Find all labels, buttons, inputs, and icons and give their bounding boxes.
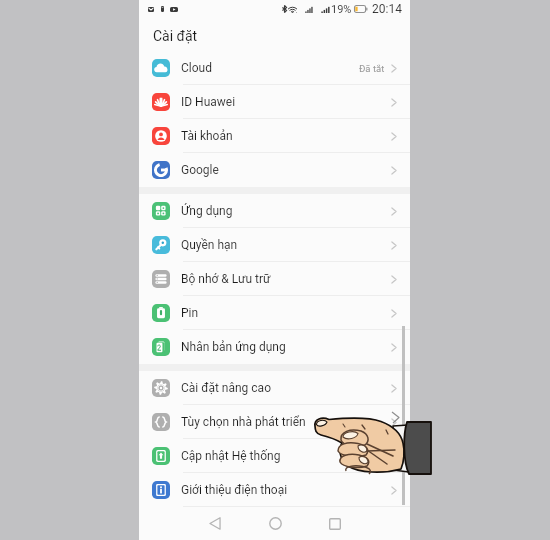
button[interactable]: Bộ nhớ & Lưu trữ — [139, 262, 410, 296]
staticText: Google — [181, 163, 219, 177]
staticText: Đã tắt — [359, 63, 385, 74]
button[interactable]: Tùy chọn nhà phát triển — [139, 405, 410, 439]
button[interactable]: Tài khoản — [139, 119, 410, 153]
button[interactable]: Cập nhật Hệ thống — [139, 439, 410, 473]
button[interactable]: Google — [139, 153, 410, 187]
button[interactable]: Nhân bản ứng dụng — [139, 330, 410, 364]
staticText: Nhân bản ứng dụng — [181, 340, 286, 354]
staticText: Cài đặt nâng cao — [181, 381, 271, 395]
button[interactable]: Cài đặt nâng cao — [139, 371, 410, 405]
staticText: Bộ nhớ & Lưu trữ — [181, 272, 271, 286]
staticText: Giới thiệu điện thoại — [181, 483, 288, 497]
staticText: Cloud — [181, 61, 212, 75]
button[interactable]: Recent apps — [305, 507, 365, 540]
button[interactable]: ID Huawei — [139, 85, 410, 119]
staticText: Pin — [181, 306, 199, 320]
button[interactable]: Pin — [139, 296, 410, 330]
button[interactable]: Quyền hạn — [139, 228, 410, 262]
button[interactable]: Back — [185, 507, 245, 540]
staticText: Quyền hạn — [181, 238, 238, 252]
button[interactable]: Ứng dụng — [139, 194, 410, 228]
staticText: ID Huawei — [181, 95, 236, 109]
button[interactable]: Cloud — [139, 51, 410, 85]
staticText: Cài đặt — [153, 28, 198, 44]
button[interactable]: Giới thiệu điện thoại — [139, 473, 410, 507]
staticText: 20:14 — [372, 2, 402, 16]
staticText: Tài khoản — [181, 129, 233, 143]
staticText: Tùy chọn nhà phát triển — [181, 415, 306, 429]
button[interactable]: Home — [245, 507, 305, 540]
staticText: Ứng dụng — [181, 204, 233, 218]
staticText: Cập nhật Hệ thống — [181, 449, 281, 463]
staticText: 19% — [331, 3, 352, 16]
